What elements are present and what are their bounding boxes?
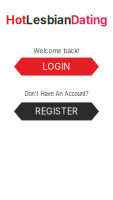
staticText: REGISTER [35,106,78,117]
staticText: Don't Have An Account? [24,91,88,97]
staticText: LOGIN [42,61,70,72]
staticText: Dating [71,13,107,27]
staticText: Hot [6,13,26,27]
staticText: Welcome back! [33,47,79,55]
staticText: Lesbian [26,13,71,27]
button[interactable]: LOGIN [14,58,99,76]
button[interactable]: REGISTER [14,102,99,120]
